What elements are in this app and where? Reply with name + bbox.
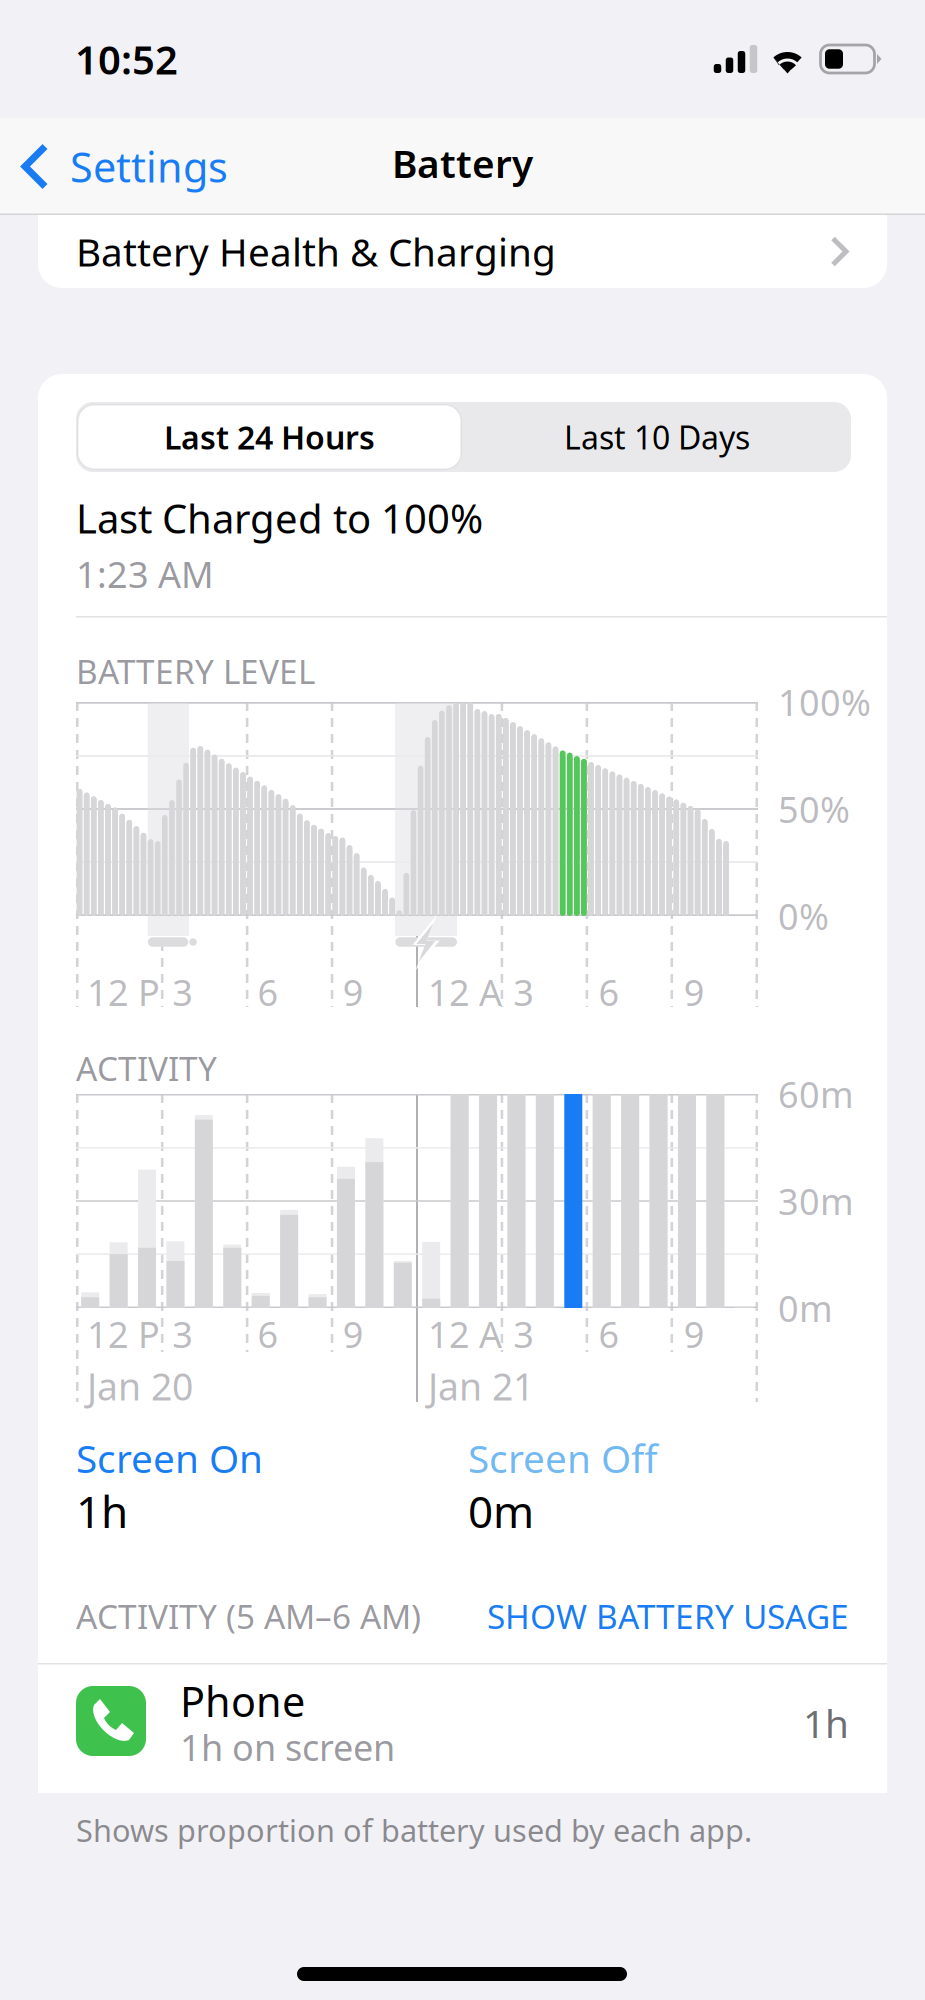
staticText: 9	[343, 1310, 364, 1358]
staticText: Jan 21	[428, 1361, 534, 1411]
button[interactable]: Last 24 Hours	[76, 402, 463, 472]
staticText: Screen On	[76, 1432, 263, 1484]
button[interactable]: SHOW BATTERY USAGE	[487, 1594, 849, 1638]
staticText: Screen Off	[468, 1432, 658, 1484]
staticText: 0m	[468, 1482, 534, 1540]
staticText: 9	[684, 1310, 705, 1358]
staticText: 6	[257, 1310, 278, 1358]
staticText: ACTIVITY (5 AM–6 AM)	[76, 1594, 421, 1638]
button[interactable]: Phone	[38, 1663, 887, 1793]
staticText: 9	[684, 968, 705, 1016]
staticText: Phone	[180, 1674, 305, 1728]
staticText: 6	[257, 968, 278, 1016]
staticText: SHOW BATTERY USAGE	[487, 1594, 849, 1638]
staticText: 30m	[778, 1177, 854, 1225]
staticText: Last 10 Days	[564, 416, 750, 458]
staticText: 9	[343, 968, 364, 1016]
button[interactable]: Settings	[0, 123, 228, 210]
staticText: 0m	[778, 1284, 833, 1332]
button[interactable]: Last 10 Days	[463, 402, 851, 472]
staticText: 1h on screen	[180, 1723, 395, 1771]
staticText: Shows proportion of battery used by each…	[76, 1810, 752, 1850]
staticText: 3	[513, 968, 534, 1016]
staticText: 3	[172, 968, 193, 1016]
staticText: 1h	[803, 1697, 849, 1749]
staticText: 1:23 AM	[76, 550, 214, 598]
staticText: Last Charged to 100%	[76, 491, 483, 544]
button[interactable]: Battery Health & Charging	[38, 175, 887, 288]
staticText: 12 A	[428, 1310, 502, 1358]
staticText: 100%	[778, 678, 871, 726]
staticText: 0%	[778, 892, 829, 940]
staticText: 10:52	[75, 32, 178, 85]
staticText: 6	[598, 968, 619, 1016]
staticText: 12 A	[428, 968, 502, 1016]
staticText: Jan 20	[87, 1361, 193, 1411]
staticText: 12 P	[87, 968, 160, 1016]
staticText: 6	[598, 1310, 619, 1358]
staticText: 12 P	[87, 1310, 160, 1358]
staticText: BATTERY LEVEL	[76, 649, 315, 693]
staticText: 3	[513, 1310, 534, 1358]
staticText: 60m	[778, 1070, 854, 1118]
staticText: 1h	[76, 1482, 128, 1540]
staticText: Battery	[392, 137, 533, 189]
staticText: ACTIVITY	[76, 1046, 217, 1090]
staticText: Settings	[70, 139, 228, 194]
staticText: Last 24 Hours	[164, 416, 375, 458]
staticText: 50%	[778, 785, 850, 833]
staticText: 3	[172, 1310, 193, 1358]
staticText: Battery Health & Charging	[76, 226, 556, 277]
